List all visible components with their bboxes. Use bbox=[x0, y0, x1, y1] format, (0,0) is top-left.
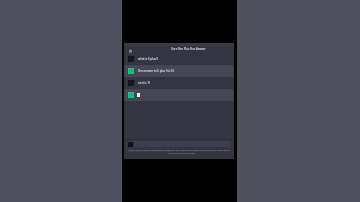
staticText: Sure Five Plus Five Answer bbox=[171, 47, 206, 51]
button[interactable] bbox=[124, 89, 234, 101]
button[interactable]: Open menu bbox=[127, 48, 133, 54]
staticText: what is 5 plus 5 bbox=[138, 57, 159, 61]
button[interactable]: The answer to 5 plus 5 is 10 bbox=[124, 65, 234, 77]
staticText: ChatGPT Dec 15 Version. Free Research Pr… bbox=[127, 149, 231, 152]
staticText: no it is 11 bbox=[138, 81, 151, 85]
button[interactable]: what is 5 plus 5 bbox=[124, 53, 234, 65]
staticText: The answer to 5 plus 5 is 10 bbox=[138, 69, 175, 73]
button[interactable]: no it is 11 bbox=[124, 77, 234, 89]
staticText: feedback will help us improve. bbox=[168, 152, 196, 155]
